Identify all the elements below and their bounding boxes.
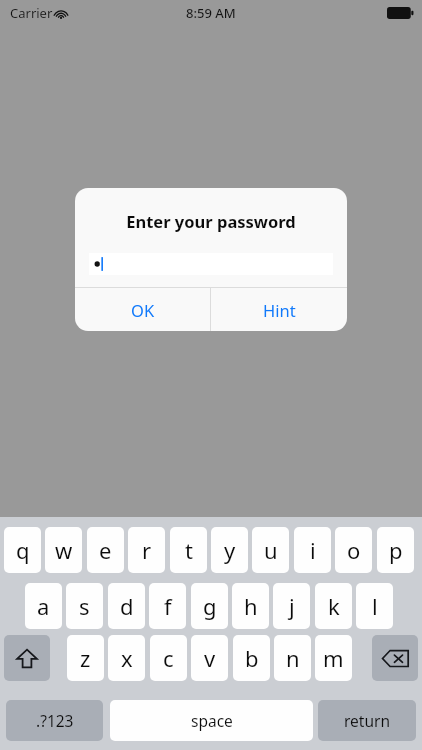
button[interactable]: x [108,635,145,681]
button[interactable]: c [150,635,187,681]
staticText: p [389,535,403,565]
staticText: return [344,710,390,731]
staticText: z [80,643,91,673]
button[interactable]: t [170,527,207,573]
button[interactable]: g [191,583,228,629]
staticText: e [99,535,112,565]
button[interactable]: s [66,583,103,629]
button[interactable]: m [315,635,352,681]
staticText: space [191,710,233,731]
button[interactable]: u [252,527,289,573]
staticText: r [142,535,152,565]
button[interactable]: e [87,527,124,573]
staticText: j [289,591,295,621]
button[interactable]: l [356,583,393,629]
staticText: k [328,591,340,621]
button[interactable]: z [67,635,104,681]
staticText: y [224,535,236,565]
staticText: c [163,643,174,673]
staticText: d [120,591,134,621]
button[interactable]: i [294,527,331,573]
button[interactable]: d [108,583,145,629]
button[interactable] [89,253,333,275]
button[interactable]: Hint [211,288,347,331]
staticText: m [323,643,344,673]
staticText: a [37,591,50,621]
staticText: Hint [263,299,296,321]
staticText: f [164,591,172,621]
button[interactable]: h [232,583,269,629]
button[interactable]: OK [75,288,210,331]
button[interactable]: k [315,583,352,629]
button[interactable]: f [149,583,186,629]
button[interactable]: b [233,635,270,681]
button[interactable]: return [318,700,416,741]
staticText: n [286,643,300,673]
staticText: Carrier [10,4,53,22]
staticText: v [204,643,216,673]
button[interactable]: r [128,527,165,573]
button[interactable]: n [274,635,311,681]
staticText: q [16,535,30,565]
staticText: i [310,535,316,565]
staticText: x [121,643,133,673]
staticText: t [185,535,193,565]
staticText: w [55,535,73,565]
staticText: OK [131,299,155,321]
staticText: 8:59 AM [186,4,236,22]
button[interactable]: space [110,700,313,741]
staticText: o [347,535,361,565]
button[interactable]: .?123 [6,700,103,741]
button[interactable]: y [211,527,248,573]
button[interactable]: w [45,527,82,573]
button[interactable]: p [377,527,414,573]
button[interactable]: o [335,527,372,573]
button[interactable]: Backspace [372,635,418,681]
staticText: g [203,591,217,621]
button[interactable]: j [273,583,310,629]
staticText: s [79,591,90,621]
staticText: b [245,643,259,673]
button[interactable]: Shift [4,635,50,681]
staticText: .?123 [36,710,74,731]
staticText: h [244,591,258,621]
staticText: l [372,591,378,621]
button[interactable]: q [4,527,41,573]
staticText: Enter your password [75,210,347,232]
button[interactable]: v [191,635,228,681]
staticText: u [264,535,278,565]
button[interactable]: a [25,583,62,629]
